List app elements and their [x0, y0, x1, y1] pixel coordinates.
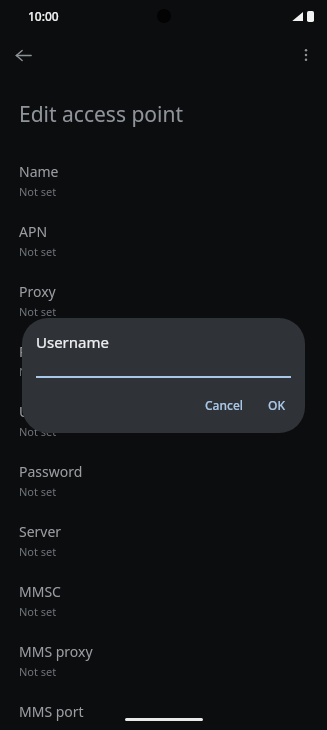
staticText: Edit access point: [19, 100, 184, 129]
staticText: Cancel: [205, 397, 244, 413]
button[interactable]: Username: [0, 396, 327, 456]
staticText: Not set: [19, 364, 57, 379]
staticText: Username: [36, 332, 109, 352]
staticText: Not set: [19, 304, 57, 319]
button[interactable]: MMS proxy: [0, 636, 327, 696]
button[interactable]: Proxy: [0, 276, 327, 336]
button[interactable]: MMS port: [0, 696, 327, 730]
staticText: OK: [268, 397, 285, 413]
staticText: Username: [19, 402, 88, 421]
button[interactable]: MMSC: [0, 576, 327, 636]
staticText: Port: [19, 342, 47, 361]
button[interactable]: Cancel: [199, 392, 250, 418]
staticText: Not set: [19, 604, 57, 619]
staticText: Not set: [19, 424, 57, 439]
staticText: Not set: [19, 244, 57, 259]
staticText: Server: [19, 522, 62, 541]
button[interactable]: OK: [262, 392, 291, 418]
staticText: Not set: [19, 664, 57, 679]
staticText: Proxy: [19, 282, 56, 301]
staticText: 10:00: [28, 8, 59, 24]
button[interactable]: Back: [8, 40, 38, 70]
staticText: Not set: [19, 544, 57, 559]
staticText: MMS proxy: [19, 642, 93, 661]
button[interactable]: Password: [0, 456, 327, 516]
staticText: APN: [19, 222, 48, 241]
staticText: MMSC: [19, 582, 61, 601]
staticText: Not set: [19, 484, 57, 499]
button[interactable]: APN: [0, 216, 327, 276]
staticText: Password: [19, 462, 83, 481]
staticText: Name: [19, 162, 59, 181]
staticText: MMS port: [19, 702, 84, 721]
button[interactable]: Server: [0, 516, 327, 576]
button[interactable]: More options: [291, 40, 321, 70]
button[interactable]: Port: [0, 336, 327, 396]
staticText: Not set: [19, 184, 57, 199]
button[interactable]: Name: [0, 156, 327, 216]
